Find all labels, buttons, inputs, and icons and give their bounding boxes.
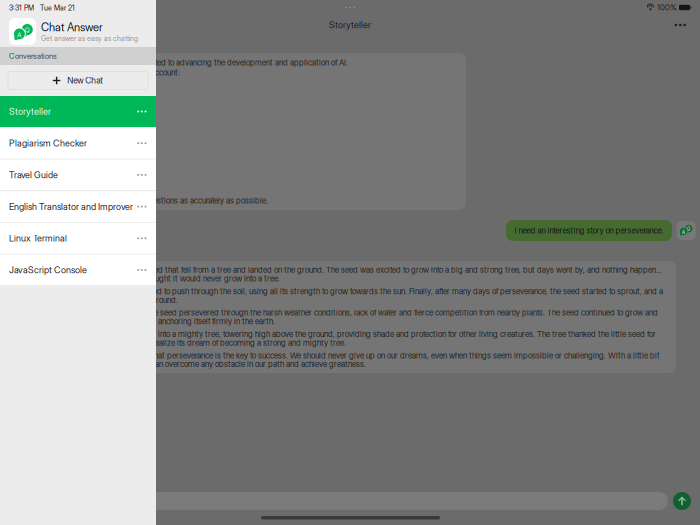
staticText: A xyxy=(17,31,21,39)
staticText: New Chat xyxy=(67,75,103,86)
button[interactable]: Linux Terminal xyxy=(0,223,156,254)
staticText: JavaScript Console xyxy=(9,264,87,275)
button[interactable]: Travel Guide xyxy=(0,159,156,190)
button[interactable]: Storyteller xyxy=(0,96,156,127)
staticText: thrive, eventually sprouting leaves and … xyxy=(22,316,275,326)
staticText: But the seed didn't give up. It continue… xyxy=(22,286,663,296)
staticText: Storyteller xyxy=(329,19,371,30)
button[interactable]: JavaScript Console xyxy=(0,254,156,285)
staticText: 100% xyxy=(657,3,677,12)
staticText: Travel Guide xyxy=(9,169,58,180)
staticText: English Translator and Improver xyxy=(9,201,133,212)
staticText: Once upon a time, there was a little see… xyxy=(22,265,664,275)
button[interactable]: More options xyxy=(664,18,700,32)
button[interactable]: Send xyxy=(673,492,691,510)
staticText: small green shoot emerged from the groun… xyxy=(22,295,178,305)
staticText: Q xyxy=(25,26,30,34)
staticText: I'm an AI research organization dedicate… xyxy=(22,58,348,67)
button[interactable]: Plagiarism Checker xyxy=(0,128,156,159)
button[interactable]: English Translator and Improver xyxy=(0,191,156,222)
staticText: Get answer as easy as chatting xyxy=(41,34,138,43)
staticText: Linux Terminal xyxy=(9,233,67,244)
staticText: I will try to understand and answer ques… xyxy=(22,196,268,205)
staticText: 3:31 PM xyxy=(9,4,34,12)
staticText: its perseverance, which had helped it re… xyxy=(22,338,346,348)
staticText: The story of the little seed teaches us … xyxy=(22,351,660,360)
staticText: of persistence and determination, we can… xyxy=(22,359,366,369)
button[interactable]: New Chat xyxy=(8,71,148,89)
staticText: Conversations xyxy=(9,51,57,61)
staticText: The seed began to doubt itself and thoug… xyxy=(22,274,280,283)
staticText: Q xyxy=(687,226,690,231)
staticText: As the days turned into weeks, the littl… xyxy=(22,308,658,318)
staticText: I will guide you through the following a… xyxy=(22,68,180,77)
staticText: I need an interesting story on persevera… xyxy=(514,226,663,235)
staticText: Tue Mar 21 xyxy=(40,4,75,12)
staticText: A xyxy=(682,229,685,235)
staticText: Storyteller xyxy=(9,106,51,117)
staticText: Chat Answer xyxy=(41,20,103,34)
staticText: Years went by, and the little seed grew … xyxy=(22,329,656,339)
staticText: Plagiarism Checker xyxy=(9,138,87,149)
